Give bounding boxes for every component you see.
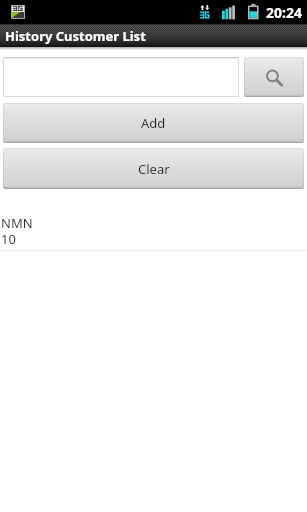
staticText: 10: [1, 230, 16, 248]
button[interactable]: Add: [3, 103, 304, 143]
button[interactable]: [3, 57, 239, 97]
button[interactable]: NMN: [0, 214, 307, 255]
button[interactable]: Clear: [3, 148, 304, 189]
button[interactable]: Search: [244, 57, 304, 97]
staticText: 20:24: [266, 3, 302, 22]
staticText: Add: [141, 114, 166, 132]
staticText: History Customer List: [5, 27, 146, 45]
staticText: Clear: [138, 160, 170, 178]
staticText: NMN: [1, 214, 33, 232]
